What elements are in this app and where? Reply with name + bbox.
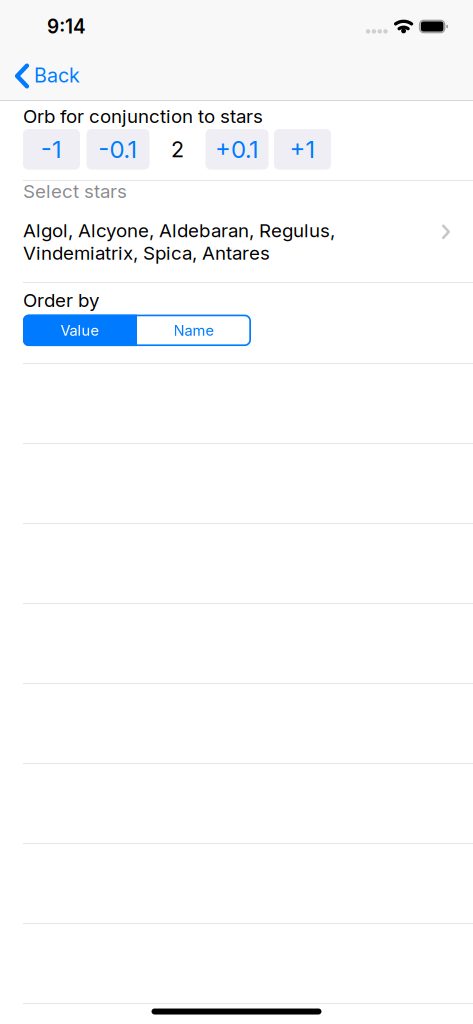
button[interactable]: -1 xyxy=(23,129,80,170)
button[interactable]: Value xyxy=(23,315,137,346)
staticText: Algol, Alcyone, Aldebaran, Regulus, xyxy=(23,219,335,242)
staticText: Order by xyxy=(23,289,99,311)
staticText: +0.1 xyxy=(215,135,259,164)
staticText: Back xyxy=(34,63,80,87)
staticText: Name xyxy=(173,321,214,339)
button[interactable]: +0.1 xyxy=(205,129,268,170)
button[interactable]: -0.1 xyxy=(86,129,149,170)
staticText: Orb for conjunction to stars xyxy=(23,105,263,128)
button[interactable]: +1 xyxy=(274,129,331,170)
staticText: 2 xyxy=(171,136,184,162)
button[interactable]: Name xyxy=(137,315,251,346)
staticText: Select stars xyxy=(23,180,127,203)
staticText: Value xyxy=(60,321,99,339)
staticText: -0.1 xyxy=(98,135,137,164)
staticText: +1 xyxy=(289,135,315,164)
staticText: -1 xyxy=(41,135,62,164)
button[interactable]: Select stars xyxy=(0,181,473,282)
staticText: Vindemiatrix, Spica, Antares xyxy=(23,242,270,264)
staticText: 9:14 xyxy=(47,15,86,38)
button[interactable]: Back xyxy=(0,42,473,101)
